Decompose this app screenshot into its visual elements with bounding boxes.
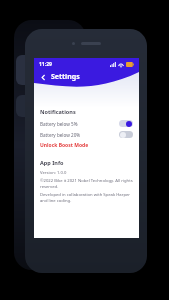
- staticText: Version: 1.0.0: [40, 170, 67, 176]
- staticText: Battery below 5%: [40, 121, 119, 127]
- button[interactable]: Unlock Boost Mode: [40, 142, 89, 149]
- button[interactable]: Back: [38, 72, 49, 83]
- button[interactable]: Battery below 20%: [40, 131, 133, 138]
- staticText: Settings: [51, 72, 80, 82]
- staticText: Notifications: [40, 108, 76, 115]
- staticText: 11:29: [39, 61, 52, 68]
- button[interactable]: Battery below 5%: [40, 120, 133, 127]
- staticText: Developed in collaboration with Speak Ha…: [40, 192, 133, 204]
- staticText: App Info: [40, 159, 64, 166]
- staticText: ©2022 Bike it 2021 Nobel Technology. All…: [40, 178, 133, 190]
- staticText: Battery below 20%: [40, 132, 119, 138]
- staticText: Unlock Boost Mode: [40, 142, 89, 149]
